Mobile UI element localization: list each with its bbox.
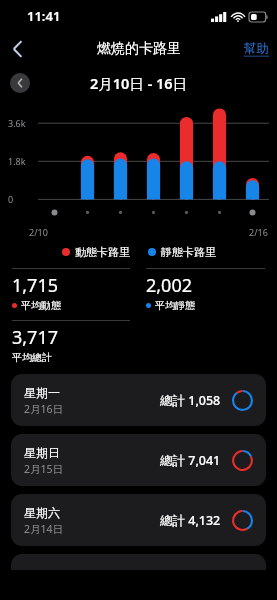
staticText: 1.8k (8, 155, 36, 167)
button[interactable]: 幫助 (236, 37, 277, 61)
staticText: 總計 1,058 (160, 392, 221, 409)
staticText: 2/16 (249, 226, 268, 238)
staticText: 星期六 (24, 505, 60, 520)
staticText: 0 (8, 193, 36, 205)
staticText: 燃燒的卡路里 (97, 40, 181, 58)
staticText: 2月16日 (24, 402, 64, 416)
staticText: 平均動態 (21, 299, 61, 312)
staticText: 動態卡路里 (75, 245, 130, 259)
staticText: 2/10 (29, 226, 48, 238)
staticText: 11:41 (27, 7, 61, 25)
staticText: 幫助 (244, 41, 269, 57)
staticText: 平均靜態 (155, 299, 195, 312)
button[interactable] (11, 554, 266, 570)
staticText: 3,717 (12, 325, 59, 350)
button[interactable]: Previous week (10, 73, 30, 93)
button[interactable]: Back (0, 32, 34, 66)
staticText: 3.6k (8, 117, 36, 129)
staticText: 1,715 (12, 273, 59, 298)
staticText: 2,002 (146, 273, 193, 298)
staticText: 總計 4,132 (160, 512, 221, 529)
staticText: 2月10日 - 16日 (90, 73, 188, 93)
staticText: 靜態卡路里 (161, 245, 216, 259)
staticText: 平均總計 (12, 351, 52, 364)
button[interactable]: 星期日 (11, 434, 266, 486)
staticText: 總計 7,041 (160, 452, 221, 469)
staticText: 星期日 (24, 445, 60, 460)
staticText: 2月14日 (24, 522, 64, 536)
staticText: 2月15日 (24, 462, 64, 476)
staticText: 星期一 (24, 385, 60, 400)
button[interactable]: 星期一 (11, 374, 266, 426)
button[interactable]: 星期六 (11, 494, 266, 546)
